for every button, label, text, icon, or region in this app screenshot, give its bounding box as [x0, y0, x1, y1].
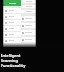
staticText: Functionality [1, 63, 26, 68]
button[interactable] [21, 0, 36, 3]
button[interactable] [21, 16, 36, 21]
staticText: Scanning [1, 58, 18, 63]
button[interactable] [3, 14, 21, 19]
button[interactable] [21, 10, 36, 13]
button[interactable] [21, 5, 36, 8]
button[interactable] [3, 38, 21, 43]
button[interactable] [3, 20, 21, 25]
button[interactable] [21, 37, 36, 42]
button[interactable] [3, 0, 21, 6]
button[interactable] [3, 32, 21, 37]
staticText: Intelligent [1, 53, 21, 58]
button[interactable] [3, 26, 21, 31]
button[interactable] [21, 30, 36, 35]
button[interactable] [21, 23, 36, 28]
button[interactable] [3, 8, 21, 13]
